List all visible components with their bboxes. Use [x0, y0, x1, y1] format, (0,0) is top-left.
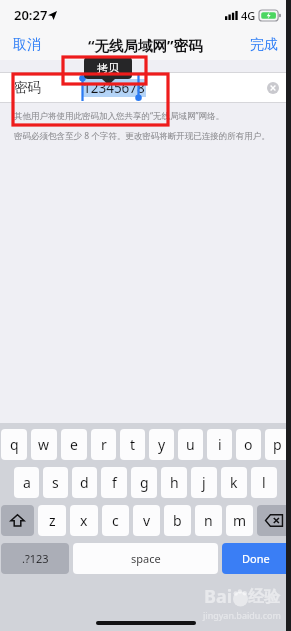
staticText: o	[244, 435, 253, 454]
staticText: n	[204, 511, 213, 530]
button[interactable]: e	[61, 429, 87, 460]
button[interactable]: y	[149, 429, 174, 460]
staticText: u	[186, 435, 195, 454]
staticText: c	[112, 511, 119, 530]
staticText: b	[173, 511, 182, 530]
staticText: w	[38, 435, 50, 454]
staticText: y	[158, 435, 166, 454]
staticText: m	[233, 511, 247, 530]
staticText: k	[230, 473, 238, 492]
staticText: s	[52, 473, 59, 492]
staticText: .?123	[22, 551, 49, 566]
staticText: 经验	[248, 587, 280, 607]
button[interactable]: n	[195, 505, 222, 536]
staticText: e	[70, 435, 78, 454]
button[interactable]: g	[131, 467, 157, 498]
button[interactable]: j	[191, 467, 217, 498]
button[interactable]: o	[236, 429, 261, 460]
staticText: 完成	[250, 36, 278, 54]
button[interactable]: x	[70, 505, 98, 536]
button[interactable]: u	[178, 429, 203, 460]
button[interactable]: p	[265, 429, 290, 460]
staticText: p	[273, 435, 282, 454]
staticText: r	[101, 435, 107, 454]
staticText: 拷贝	[97, 61, 119, 75]
button[interactable]: m	[226, 505, 253, 536]
button[interactable]: 拷贝	[84, 57, 132, 79]
staticText: Bai	[204, 584, 233, 609]
staticText: space	[131, 551, 161, 566]
staticText: 4G	[241, 8, 256, 23]
button[interactable]: s	[43, 467, 68, 498]
button[interactable]: l	[251, 467, 277, 498]
staticText: i	[218, 435, 222, 454]
staticText: q	[10, 435, 19, 454]
button[interactable]: i	[207, 429, 232, 460]
button[interactable]: q	[1, 429, 27, 460]
staticText: 密码必须包含至少 8 个字符。更改密码将断开现已连接的所有用户。	[14, 130, 277, 142]
staticText: v	[143, 511, 151, 530]
button[interactable]: Backspace	[257, 505, 290, 536]
button[interactable]: 完成	[237, 32, 291, 58]
staticText: jingyan.baidu.com	[203, 609, 281, 621]
staticText: j	[202, 473, 206, 492]
button[interactable]: r	[91, 429, 116, 460]
staticText: t	[130, 435, 136, 454]
button[interactable]: Done	[222, 543, 290, 574]
staticText: 密码	[14, 79, 41, 96]
button[interactable]: .?123	[1, 543, 69, 574]
staticText: 其他用户将使用此密码加入您共享的“无线局域网”网络。	[14, 110, 277, 122]
button[interactable]: b	[164, 505, 191, 536]
button[interactable]: h	[161, 467, 187, 498]
staticText: 取消	[13, 36, 41, 54]
button[interactable]: a	[14, 467, 39, 498]
staticText: Done	[242, 551, 270, 566]
staticText: x	[80, 511, 88, 530]
button[interactable]: w	[31, 429, 57, 460]
button[interactable]: t	[120, 429, 145, 460]
button[interactable]: 取消	[0, 32, 54, 58]
staticText: f	[112, 473, 117, 492]
button[interactable]: space	[73, 543, 218, 574]
button[interactable]: f	[101, 467, 127, 498]
staticText: g	[140, 473, 149, 492]
staticText: h	[170, 473, 179, 492]
button[interactable]: z	[38, 505, 66, 536]
button[interactable]: d	[72, 467, 97, 498]
staticText: d	[80, 473, 89, 492]
button[interactable]: Clear text	[264, 79, 282, 97]
button[interactable]: Shift	[1, 505, 34, 536]
staticText: 20:27	[14, 6, 48, 24]
button[interactable]: v	[133, 505, 160, 536]
staticText: z	[49, 511, 56, 530]
button[interactable]: k	[221, 467, 247, 498]
staticText: a	[23, 473, 31, 492]
staticText: l	[262, 473, 266, 492]
staticText: “无线局域网”密码	[88, 35, 203, 55]
staticText: 12345678	[83, 79, 145, 97]
button[interactable]: 密码	[0, 72, 291, 103]
button[interactable]: c	[102, 505, 129, 536]
